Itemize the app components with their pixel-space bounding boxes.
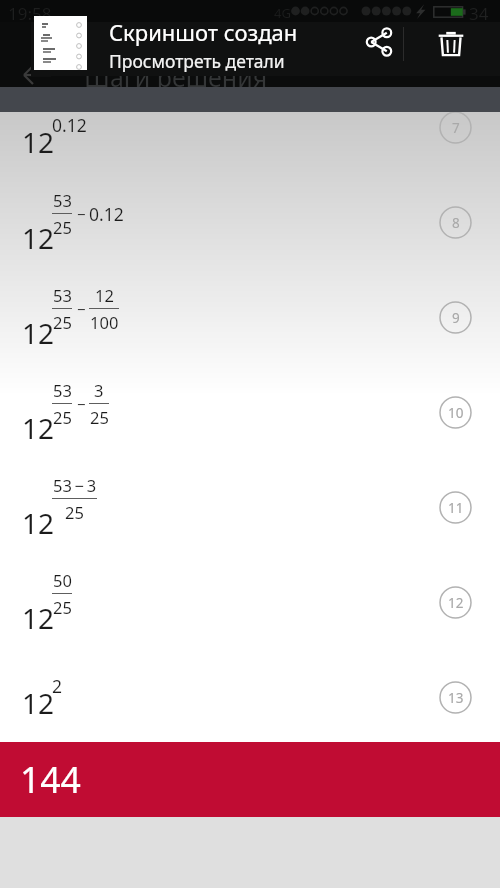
staticText: 12	[22, 504, 55, 542]
staticText: −	[77, 394, 86, 414]
button[interactable]: 12	[0, 555, 500, 650]
staticText: 12	[22, 684, 55, 722]
staticText: 34	[469, 2, 489, 24]
staticText: 0.12	[89, 202, 124, 226]
staticText: Скриншот создан	[109, 17, 298, 47]
staticText: 11	[448, 499, 464, 517]
staticText: 53	[53, 379, 72, 401]
button[interactable]: 12	[0, 270, 500, 365]
button[interactable]: 144	[0, 742, 500, 817]
button[interactable]: 12	[0, 650, 500, 742]
staticText: 25	[65, 501, 84, 523]
staticText: 13	[448, 689, 464, 707]
staticText: −	[77, 299, 86, 319]
staticText: 3	[94, 379, 104, 401]
other: Back	[22, 64, 52, 86]
staticText: 12	[22, 409, 55, 447]
staticText: 144	[20, 755, 81, 803]
button[interactable]: 12	[0, 175, 500, 270]
staticText: 12	[22, 599, 55, 637]
staticText: 53	[53, 189, 72, 211]
staticText: 25	[53, 596, 72, 618]
staticText: 53	[53, 284, 72, 306]
staticText: 0.12	[52, 113, 87, 137]
staticText: 12	[22, 314, 55, 352]
button[interactable]: 12	[0, 365, 500, 460]
staticText: 12	[448, 594, 464, 612]
staticText: 25	[53, 311, 72, 333]
staticText: −	[77, 204, 86, 224]
button[interactable]: Delete	[420, 12, 482, 74]
staticText: 53 − 3	[53, 474, 97, 496]
staticText: 19:58	[8, 2, 52, 24]
button[interactable]: Back	[0, 0, 500, 87]
staticText: 12	[22, 123, 55, 161]
staticText: 4G	[274, 4, 291, 22]
staticText: 9	[452, 309, 460, 327]
staticText: Просмотреть детали	[109, 49, 285, 73]
staticText: 25	[53, 216, 72, 238]
button[interactable]: 12	[0, 112, 500, 175]
staticText: 10	[448, 404, 464, 422]
staticText: 2	[52, 674, 63, 698]
staticText: 25	[53, 406, 72, 428]
staticText: 7	[452, 119, 460, 137]
button[interactable]: 12	[0, 460, 500, 555]
staticText: 50	[53, 569, 72, 591]
staticText: 12	[95, 284, 114, 306]
button[interactable]: Share	[352, 15, 406, 69]
staticText: 100	[90, 311, 119, 333]
button[interactable]	[31, 22, 500, 76]
staticText: Шаги решения	[84, 60, 268, 94]
staticText: 25	[90, 406, 109, 428]
staticText: 12	[22, 219, 55, 257]
staticText: 8	[452, 214, 460, 232]
